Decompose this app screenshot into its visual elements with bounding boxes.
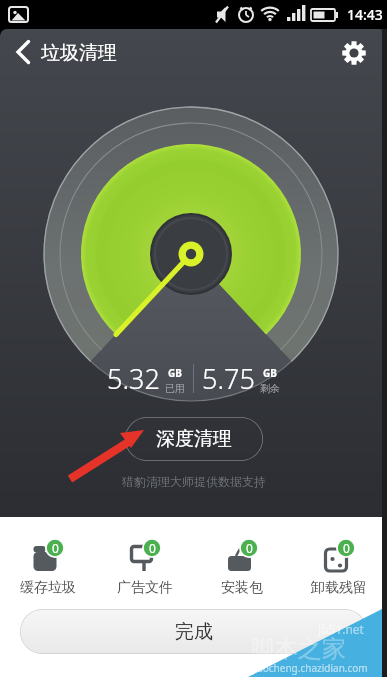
button[interactable]: 0 xyxy=(0,517,96,597)
staticText: 5.32 xyxy=(107,360,160,397)
button[interactable]: 0 xyxy=(290,517,387,597)
staticText: 垃圾清理 xyxy=(41,41,117,65)
staticText: 卸载残留 xyxy=(311,579,367,597)
staticText: GB xyxy=(263,366,277,380)
staticText: 14:43 xyxy=(347,5,383,24)
staticText: jiaocheng.chazidian.com xyxy=(252,661,368,675)
staticText: 剩余 xyxy=(260,382,280,395)
button[interactable]: Settings xyxy=(339,29,387,77)
staticText: 深度清理 xyxy=(156,427,232,451)
staticText: 0 xyxy=(343,540,350,556)
button[interactable]: 完成 xyxy=(20,609,367,654)
staticText: 猎豹清理大师提供数据支持 xyxy=(122,474,266,489)
button[interactable]: 0 xyxy=(96,517,193,597)
staticText: 5.75 xyxy=(202,360,255,397)
staticText: jb51.net xyxy=(318,621,364,637)
staticText: 安装包 xyxy=(221,579,263,597)
button[interactable]: 0 xyxy=(193,517,290,597)
staticText: 已用 xyxy=(165,382,185,395)
staticText: 广告文件 xyxy=(117,579,173,597)
staticText: 0 xyxy=(246,540,253,556)
staticText: 缓存垃圾 xyxy=(20,579,76,597)
staticText: 0 xyxy=(52,540,59,556)
button[interactable]: Back xyxy=(0,29,46,75)
staticText: 完成 xyxy=(175,620,213,644)
staticText: GB xyxy=(168,366,182,380)
staticText: 脚本之家 xyxy=(250,634,346,664)
button[interactable]: 深度清理 xyxy=(125,417,263,461)
staticText: 0 xyxy=(149,540,156,556)
